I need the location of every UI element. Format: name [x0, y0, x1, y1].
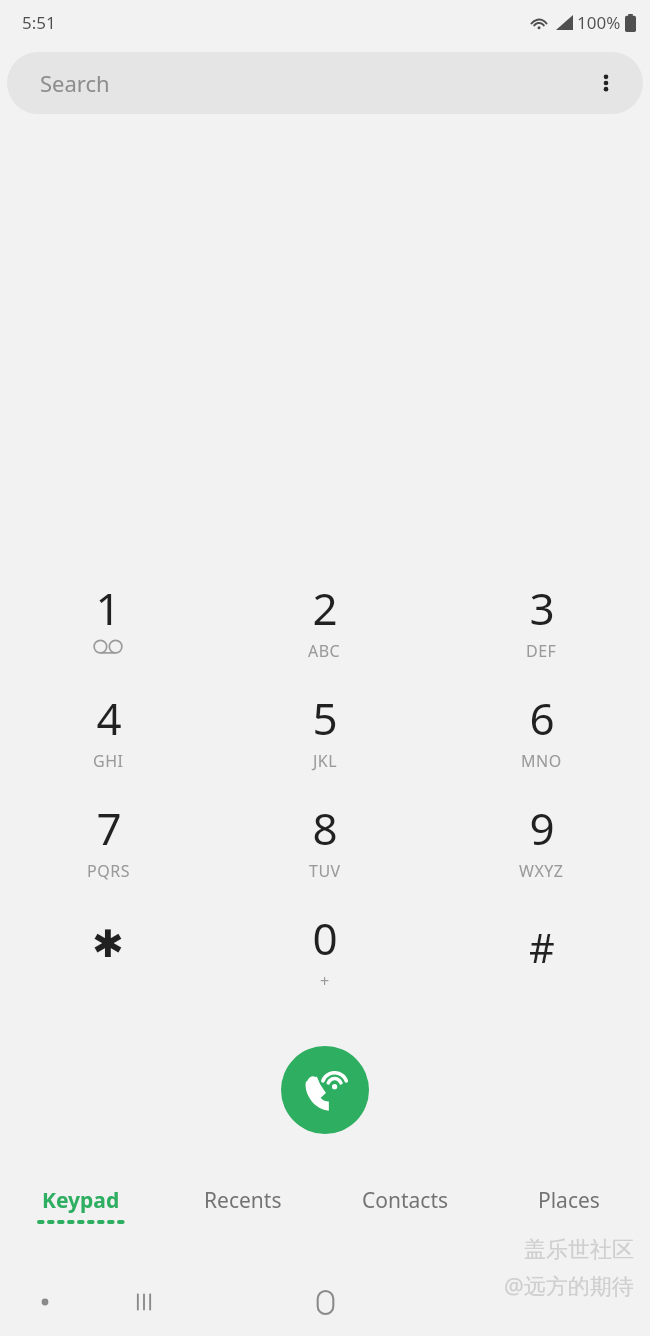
staticText: 3 — [529, 578, 555, 638]
staticText: @远方的期待 — [504, 1270, 634, 1300]
staticText: GHI — [93, 750, 124, 772]
staticText: Keypad — [42, 1186, 120, 1215]
staticText: JKL — [313, 750, 338, 772]
staticText: Recents — [204, 1186, 282, 1215]
button[interactable]: ✱ — [0, 908, 216, 1018]
button[interactable]: 2 — [216, 578, 433, 688]
button[interactable]: 7 — [0, 798, 216, 908]
button[interactable]: Places — [487, 1186, 650, 1246]
button[interactable]: Home — [301, 1278, 349, 1326]
staticText: Places — [538, 1186, 600, 1215]
button[interactable]: # — [433, 908, 650, 1018]
button[interactable]: Recent apps — [122, 1280, 166, 1324]
staticText: TUV — [309, 860, 341, 882]
button[interactable]: Keypad — [0, 1186, 162, 1246]
staticText: 9 — [529, 798, 555, 858]
staticText: PQRS — [87, 860, 130, 882]
button[interactable]: Contacts — [324, 1186, 487, 1246]
button[interactable]: Search — [7, 52, 643, 114]
button[interactable]: More options — [583, 60, 629, 106]
button[interactable]: 4 — [0, 688, 216, 798]
button[interactable]: Call — [281, 1046, 369, 1134]
button[interactable]: 5 — [216, 688, 433, 798]
staticText: Contacts — [362, 1186, 449, 1215]
staticText: 盖乐世社区 — [524, 1236, 634, 1264]
staticText: 5:51 — [22, 11, 56, 34]
staticText: # — [529, 920, 555, 974]
staticText: ✱ — [92, 922, 124, 966]
staticText: MNO — [521, 750, 562, 772]
staticText: Search — [40, 68, 110, 98]
staticText: DEF — [526, 640, 557, 662]
staticText: 5 — [312, 688, 338, 748]
staticText: + — [320, 970, 330, 992]
staticText: 8 — [312, 798, 338, 858]
staticText: 4 — [96, 688, 122, 748]
button[interactable]: 1 — [0, 578, 216, 688]
button[interactable]: 6 — [433, 688, 650, 798]
button[interactable]: 0 — [216, 908, 433, 1018]
staticText: 7 — [96, 798, 122, 858]
button[interactable]: Recents — [162, 1186, 324, 1246]
button[interactable]: 9 — [433, 798, 650, 908]
staticText: 2 — [312, 578, 338, 638]
staticText: 1 — [95, 578, 121, 638]
button[interactable]: Back — [30, 1287, 60, 1317]
staticText: 0 — [312, 908, 338, 968]
staticText: WXYZ — [519, 860, 564, 882]
staticText: 6 — [529, 688, 555, 748]
button[interactable]: 3 — [433, 578, 650, 688]
staticText: ABC — [308, 640, 341, 662]
button[interactable]: 8 — [216, 798, 433, 908]
staticText: 100% — [577, 11, 621, 34]
